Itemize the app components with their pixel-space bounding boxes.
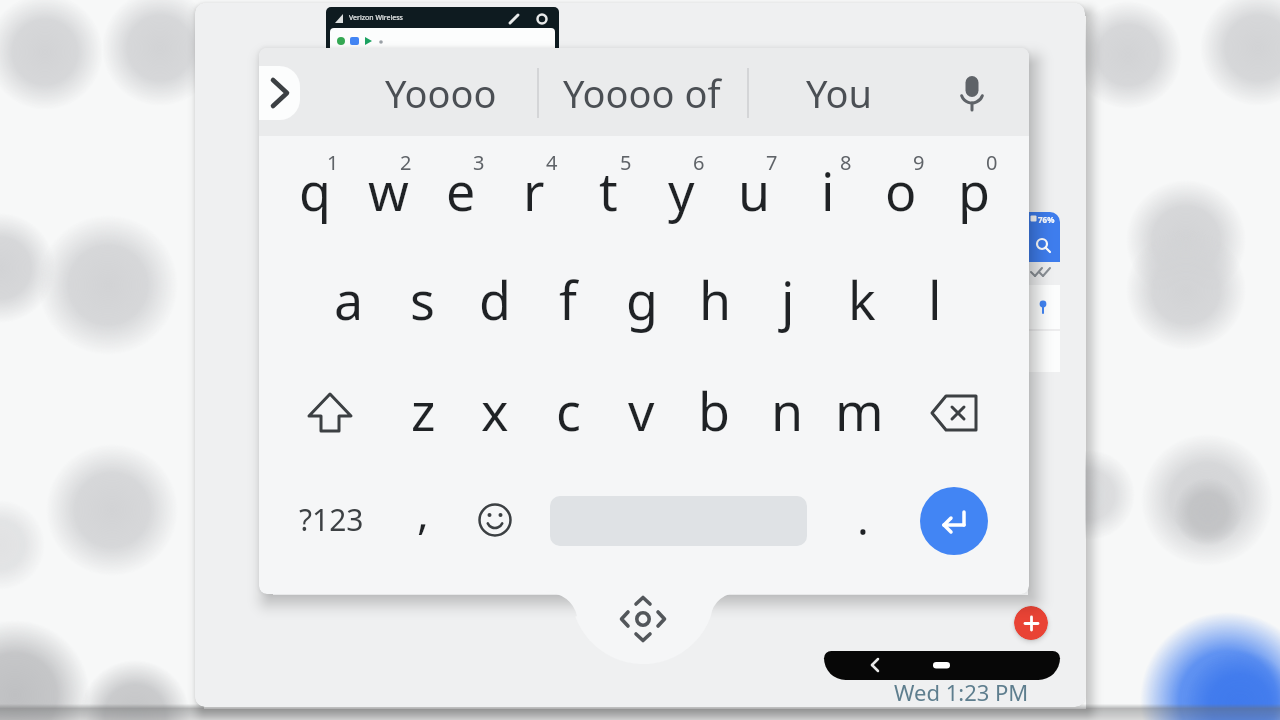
button[interactable] [1029,212,1060,262]
button[interactable]: f [532,259,604,339]
staticText: . [857,488,869,548]
button[interactable]: j [752,259,824,339]
staticText: 4 [546,149,558,176]
staticText: y [668,155,695,226]
button[interactable]: z [387,370,459,450]
button[interactable]: o [865,150,937,230]
button[interactable]: c [532,370,604,450]
button[interactable]: , [398,477,448,547]
button[interactable]: 6 [684,147,714,177]
button[interactable]: Yoooo [351,63,531,123]
staticText: o [885,155,917,226]
button[interactable] [921,377,993,449]
button[interactable]: w [352,150,424,230]
staticText: r [523,155,545,226]
staticText: w [368,155,409,226]
staticText: l [928,264,942,335]
button[interactable]: 3 [464,147,494,177]
staticText: 5 [620,149,632,176]
button[interactable]: You [749,63,929,123]
staticText: d [479,264,511,335]
button[interactable]: n [751,370,823,450]
button[interactable]: v [605,370,677,450]
button[interactable]: 2 [391,147,421,177]
staticText: Yoooo of [563,67,721,119]
staticText: 0 [986,149,998,176]
staticText: ?123 [299,499,364,540]
staticText: 7 [766,149,778,176]
staticText: n [771,375,804,446]
staticText: Verizon Wireless [349,13,403,23]
staticText: 3 [473,149,485,176]
staticText: c [556,375,581,446]
button[interactable] [294,377,366,449]
staticText: g [626,264,658,335]
staticText: 1 [327,149,339,176]
staticText: Wed 1:23 PM [894,677,1029,707]
button[interactable]: Wed 1:23 PM [894,677,1029,707]
staticText: 2 [400,149,412,176]
button[interactable]: Yoooo of [552,63,732,123]
button[interactable]: u [718,150,790,230]
staticText: i [821,155,835,226]
staticText: m [835,375,884,446]
button[interactable]: l [899,259,971,339]
button[interactable] [463,489,527,553]
button[interactable]: i [792,150,864,230]
staticText: You [806,67,873,119]
staticText: p [958,155,990,226]
button[interactable]: m [823,370,895,450]
staticText: f [559,264,577,335]
staticText: v [628,375,655,446]
staticText: 8 [840,149,852,176]
button[interactable] [824,651,1060,680]
staticText: 76% [1038,214,1055,225]
button[interactable]: 8 [831,147,861,177]
button[interactable]: 0 [977,147,1007,177]
staticText: k [848,264,876,335]
button[interactable]: s [386,259,458,339]
button[interactable]: y [645,150,717,230]
staticText: 9 [913,149,925,176]
button[interactable]: k [826,259,898,339]
button[interactable]: p [938,150,1010,230]
button[interactable]: r [498,150,570,230]
button[interactable]: a [313,259,385,339]
button[interactable]: e [425,150,497,230]
button[interactable] [920,487,988,555]
button[interactable]: 1 [318,147,348,177]
button[interactable]: 9 [904,147,934,177]
staticText: j [781,264,795,335]
staticText: q [299,155,331,226]
button[interactable]: . [838,483,888,553]
staticText: a [334,264,364,335]
staticText: t [599,155,618,226]
button[interactable] [259,66,300,120]
button[interactable]: g [606,259,678,339]
staticText: , [417,482,429,542]
button[interactable]: ?123 [286,489,376,549]
staticText: s [410,264,435,335]
staticText: u [738,155,771,226]
button[interactable]: x [459,370,531,450]
button[interactable]: 7 [757,147,787,177]
button[interactable]: h [679,259,751,339]
staticText: Yoooo [385,67,497,119]
button[interactable]: d [459,259,531,339]
button[interactable]: 5 [611,147,641,177]
button[interactable] [1014,606,1048,640]
staticText: h [699,264,732,335]
staticText: e [446,155,476,226]
button[interactable]: q [279,150,351,230]
staticText: b [698,375,730,446]
button[interactable]: 4 [537,147,567,177]
button[interactable]: b [678,370,750,450]
button[interactable] [948,69,996,117]
staticText: 6 [693,149,705,176]
staticText: z [411,375,436,446]
staticText: x [481,375,509,446]
button[interactable]: t [572,150,644,230]
